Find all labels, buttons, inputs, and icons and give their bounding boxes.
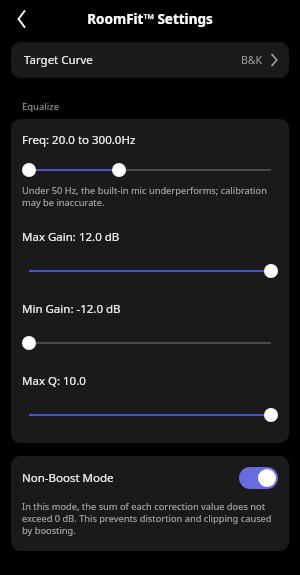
staticText: B&K	[241, 53, 263, 67]
button[interactable]: Slider	[22, 260, 278, 282]
staticText: Equalize	[22, 100, 60, 113]
button[interactable]: Non-Boost Mode	[11, 456, 289, 500]
button[interactable]: Slider	[22, 332, 278, 354]
button[interactable]: Back	[6, 3, 38, 35]
button[interactable]: Non-Boost Mode toggle	[239, 467, 278, 489]
staticText: Max Gain: 12.0 dB	[22, 229, 120, 245]
staticText: Target Curve	[24, 52, 93, 68]
staticText: Freq: 20.0 to 300.0Hz	[22, 132, 136, 148]
staticText: Min Gain: -12.0 dB	[22, 301, 121, 317]
staticText: Max Q: 10.0	[22, 373, 86, 389]
button[interactable]: Target Curve	[11, 42, 289, 78]
button[interactable]: Slider	[22, 404, 278, 426]
staticText: RoomFit™ Settings	[87, 10, 213, 28]
staticText: Non-Boost Mode	[22, 470, 239, 486]
staticText: In this mode, the sum of each correction…	[22, 500, 275, 537]
button[interactable]: Slider	[22, 159, 278, 181]
staticText: Under 50 Hz, the built-in mic underperfo…	[22, 184, 278, 209]
